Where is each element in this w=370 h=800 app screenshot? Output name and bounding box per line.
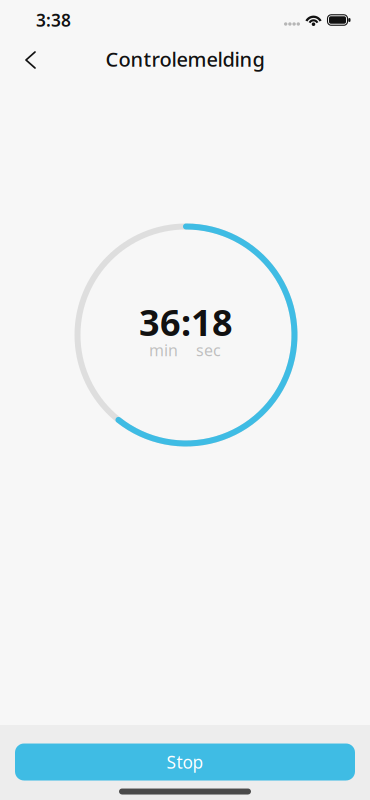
staticText: 36:18 (139, 298, 233, 346)
button[interactable]: Stop (15, 743, 355, 780)
staticText: 3:38 (36, 8, 71, 31)
staticText: sec (196, 339, 221, 361)
staticText: min (149, 339, 178, 361)
staticText: Stop (166, 750, 203, 773)
button[interactable]: Back (0, 41, 49, 79)
staticText: Controlemelding (105, 46, 264, 72)
